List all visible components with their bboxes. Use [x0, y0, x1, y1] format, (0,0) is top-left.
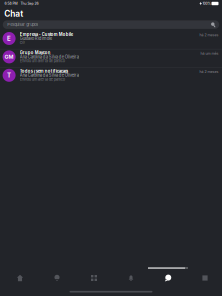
button[interactable]: T — [0, 68, 222, 86]
staticText: GM — [5, 54, 14, 60]
staticText: Thu Sep 26 — [17, 1, 38, 6]
staticText: Empresa - Custom Mobile — [20, 32, 73, 37]
button[interactable]: More — [185, 267, 222, 286]
staticText: Todos (sem notificacao) — [20, 69, 69, 74]
staticText: Enviou um alerta de pânico — [20, 59, 65, 63]
staticText: Ana Carolina da Silva de Oliveira — [20, 54, 79, 59]
button[interactable]: E — [0, 31, 222, 49]
staticText: Oi! — [20, 40, 25, 45]
staticText: T — [7, 72, 11, 79]
button[interactable]: GM — [0, 49, 222, 67]
staticText: Grupo Maycon — [20, 50, 51, 55]
staticText: E — [7, 35, 11, 42]
staticText: Gustavo Ridimole — [20, 36, 52, 41]
staticText: Enviou um alerta de pânico — [20, 77, 65, 82]
button[interactable]: Chat — [148, 267, 185, 286]
staticText: Pesquisar grupos — [7, 22, 38, 27]
button[interactable]: Locations — [37, 267, 74, 286]
button[interactable]: Apps — [74, 267, 111, 286]
staticText: há 2 meses — [199, 70, 218, 74]
staticText: 100% — [202, 1, 210, 6]
button[interactable]: Home — [0, 267, 37, 286]
staticText: Ana Carolina da Silva de Oliveira — [20, 73, 79, 78]
staticText: Chat — [4, 9, 23, 19]
staticText: 6:58 PM — [4, 1, 17, 6]
button[interactable]: Alerts — [111, 267, 148, 286]
staticText: há 2 meses — [199, 33, 218, 37]
staticText: há um mês — [200, 51, 218, 56]
